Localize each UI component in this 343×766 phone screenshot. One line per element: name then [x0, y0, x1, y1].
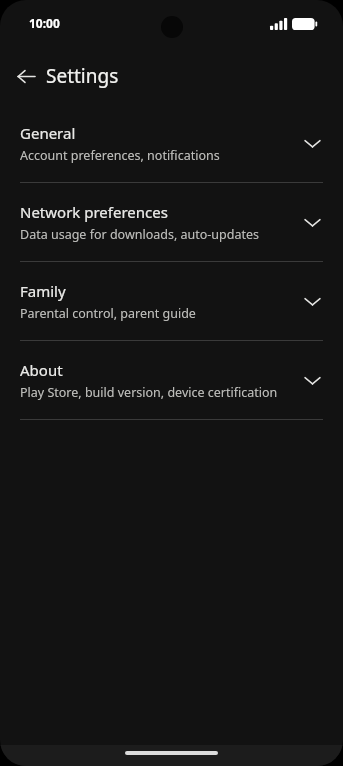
staticText: Account preferences, notifications [20, 147, 220, 164]
button[interactable]: General [0, 104, 343, 182]
staticText: Settings [46, 63, 119, 89]
staticText: Play Store, build version, device certif… [20, 384, 278, 401]
staticText: About [20, 360, 63, 380]
staticText: 10:00 [29, 15, 60, 31]
other: Expand General [299, 130, 325, 156]
staticText: Network preferences [20, 202, 168, 222]
other: Expand Family [299, 288, 325, 314]
button[interactable]: About [0, 341, 343, 419]
staticText: Parental control, parent guide [20, 305, 196, 322]
button[interactable]: Network preferences [0, 183, 343, 261]
staticText: Data usage for downloads, auto-updates [20, 226, 260, 243]
other: Expand About [299, 367, 325, 393]
staticText: General [20, 123, 76, 143]
other: Expand Network preferences [299, 209, 325, 235]
staticText: Family [20, 281, 66, 301]
button[interactable]: Family [0, 262, 343, 340]
button[interactable]: Back [12, 62, 40, 90]
